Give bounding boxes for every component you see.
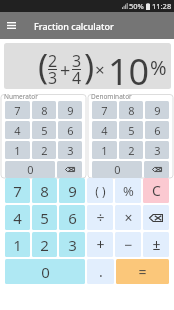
button[interactable]: 6	[145, 121, 169, 139]
staticText: +	[60, 58, 71, 83]
staticText: 4	[14, 123, 21, 138]
button[interactable]: Backspace	[143, 205, 169, 230]
button[interactable]: =	[116, 259, 169, 284]
button[interactable]: Backspace	[144, 161, 169, 178]
staticText: 3	[154, 143, 161, 158]
button[interactable]: ( )	[87, 178, 113, 203]
staticText: 7	[14, 103, 21, 118]
staticText: 0	[41, 262, 50, 282]
staticText: 3	[68, 235, 77, 255]
button[interactable]: 5	[32, 205, 57, 230]
button[interactable]: .	[87, 259, 114, 284]
staticText: 9	[154, 103, 161, 118]
staticText: 1	[101, 143, 108, 158]
staticText: 5	[40, 208, 49, 228]
button[interactable]: 8	[32, 178, 57, 203]
button[interactable]: ×	[115, 205, 141, 230]
staticText: ÷	[96, 208, 105, 227]
button[interactable]: 4	[5, 121, 30, 139]
staticText: 6	[68, 208, 77, 228]
staticText: 3	[48, 67, 57, 89]
staticText: 5	[128, 123, 135, 138]
button[interactable]: +	[87, 232, 113, 257]
staticText: 10	[108, 47, 150, 89]
staticText: )	[84, 43, 95, 89]
button[interactable]: 6	[58, 121, 82, 139]
staticText: 50%	[129, 1, 144, 11]
button[interactable]: 3	[58, 141, 82, 159]
button[interactable]: %	[115, 178, 141, 203]
staticText: C	[152, 181, 161, 200]
button[interactable]: 8	[119, 101, 143, 119]
staticText: 5	[41, 123, 48, 138]
button[interactable]: 0	[92, 161, 142, 178]
button[interactable]: 7	[92, 101, 117, 119]
button[interactable]: ±	[143, 232, 169, 257]
staticText: 2	[41, 143, 48, 158]
staticText: =	[138, 262, 147, 281]
staticText: .	[99, 262, 103, 281]
staticText: −	[124, 235, 133, 254]
button[interactable]: 4	[5, 205, 30, 230]
staticText: 9	[68, 181, 77, 201]
button[interactable]: Backspace	[57, 161, 82, 178]
staticText: 4	[101, 123, 108, 138]
staticText: 9	[67, 103, 74, 118]
staticText: (	[38, 43, 49, 89]
button[interactable]: 6	[59, 205, 85, 230]
staticText: 7	[13, 181, 22, 201]
button[interactable]: 9	[58, 101, 82, 119]
button[interactable]: C	[143, 178, 169, 203]
button[interactable]: 0	[5, 259, 85, 284]
staticText: %	[123, 182, 134, 200]
staticText: 7	[101, 103, 108, 118]
staticText: 6	[154, 123, 161, 138]
button[interactable]: 1	[92, 141, 117, 159]
staticText: 3	[72, 50, 81, 72]
staticText: 8	[40, 181, 49, 201]
button[interactable]: 2	[32, 232, 57, 257]
staticText: 1	[13, 235, 22, 255]
staticText: 0	[114, 162, 121, 177]
button[interactable]: 9	[145, 101, 169, 119]
staticText: +	[96, 235, 105, 254]
staticText: ( )	[95, 183, 106, 199]
staticText: 11:28	[152, 1, 172, 11]
button[interactable]: Open navigation menu	[3, 17, 20, 34]
button[interactable]: 2	[119, 141, 143, 159]
staticText: 1	[14, 143, 21, 158]
staticText: 6	[67, 123, 74, 138]
staticText: 0	[27, 162, 34, 177]
staticText: 2	[128, 143, 135, 158]
staticText: Numerator	[4, 92, 38, 101]
button[interactable]: 9	[59, 178, 85, 203]
button[interactable]: 5	[119, 121, 143, 139]
staticText: ×	[124, 208, 133, 227]
staticText: Denominator	[91, 92, 132, 101]
button[interactable]: 2	[32, 141, 56, 159]
staticText: ±	[152, 235, 161, 254]
button[interactable]: 5	[32, 121, 56, 139]
button[interactable]: 7	[5, 178, 30, 203]
button[interactable]: 3	[145, 141, 169, 159]
staticText: 4	[72, 67, 81, 89]
button[interactable]: 4	[92, 121, 117, 139]
staticText: %	[150, 54, 167, 81]
staticText: Fraction calculator	[34, 20, 114, 32]
button[interactable]: 7	[5, 101, 30, 119]
staticText: ×	[95, 58, 105, 81]
button[interactable]: −	[115, 232, 141, 257]
button[interactable]: 0	[5, 161, 55, 178]
staticText: 2	[48, 50, 57, 72]
staticText: 3	[67, 143, 74, 158]
staticText: 4	[13, 208, 22, 228]
button[interactable]: 8	[32, 101, 56, 119]
button[interactable]: 1	[5, 141, 30, 159]
button[interactable]: 3	[59, 232, 85, 257]
staticText: 2	[40, 235, 49, 255]
button[interactable]: 1	[5, 232, 30, 257]
staticText: 8	[41, 103, 48, 118]
staticText: 8	[128, 103, 135, 118]
button[interactable]: ÷	[87, 205, 113, 230]
